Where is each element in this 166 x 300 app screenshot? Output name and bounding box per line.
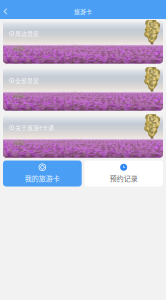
staticText: 我的旅游卡 — [25, 173, 60, 183]
staticText: 全部景区 — [15, 76, 39, 85]
button[interactable]: 全部景区 — [3, 67, 163, 111]
staticText: 旅游卡 — [74, 7, 92, 16]
button[interactable]: 周边景区 — [3, 20, 163, 63]
button[interactable]: 我的旅游卡 — [3, 160, 82, 186]
staticText: 预约记录 — [110, 173, 138, 183]
staticText: 关于旅游e卡通 — [15, 124, 54, 132]
staticText: 周边景区 — [15, 29, 39, 37]
button[interactable]: 预约记录 — [84, 160, 163, 186]
button[interactable]: Back — [0, 3, 8, 16]
button[interactable]: 关于旅游e卡通 — [3, 114, 163, 158]
